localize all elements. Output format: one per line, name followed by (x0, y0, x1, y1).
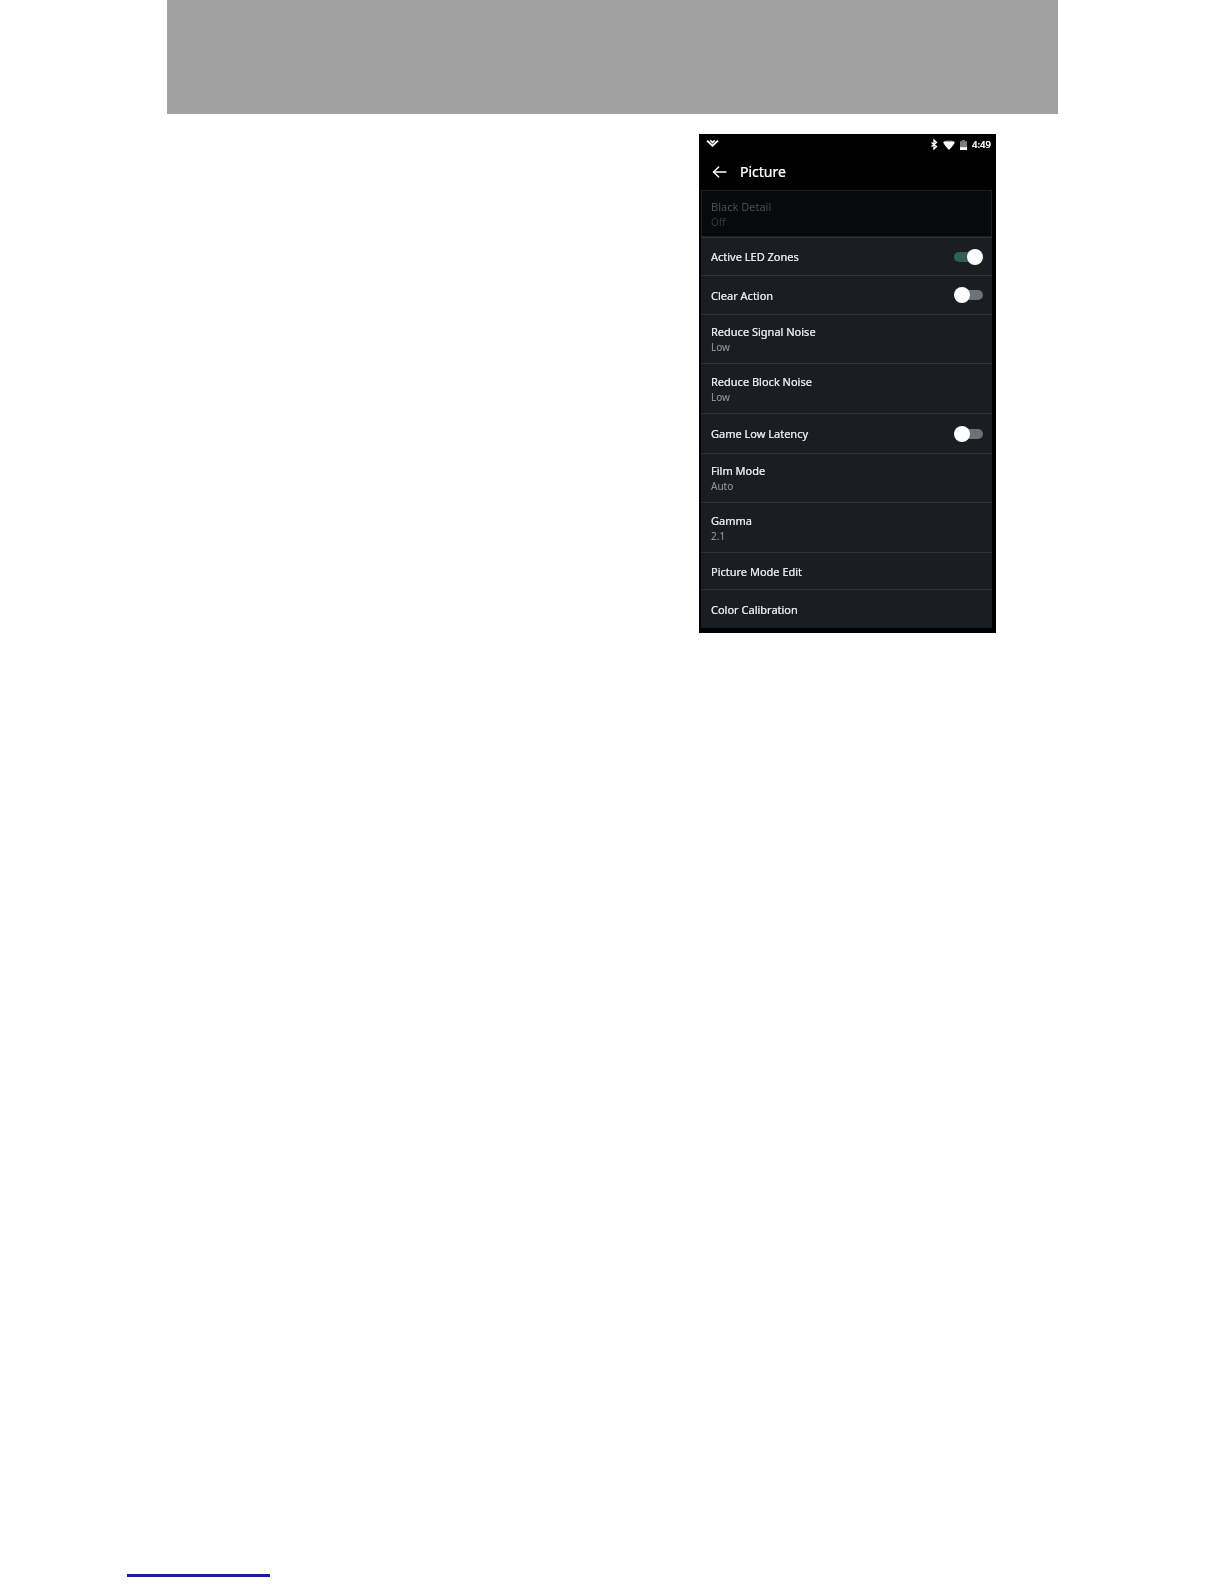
button[interactable]: Game Low Latency (701, 414, 992, 453)
button[interactable]: Active LED Zones (701, 238, 992, 275)
button[interactable]: Reduce Signal Noise (701, 315, 992, 363)
staticText: Active LED Zones (711, 249, 954, 264)
staticText: Reduce Signal Noise (711, 324, 816, 339)
staticText: Low (711, 340, 730, 354)
staticText: 2.1 (711, 529, 726, 543)
button[interactable]: Color Calibration (701, 590, 992, 628)
staticText: Gamma (711, 513, 752, 528)
button[interactable]: Back (710, 163, 728, 181)
staticText: Picture Mode Edit (711, 564, 803, 579)
other: Battery (960, 140, 967, 150)
button[interactable]: Reduce Block Noise (701, 364, 992, 413)
staticText: Color Calibration (711, 602, 798, 617)
other: Notifications (707, 140, 718, 146)
staticText: Black Detail (711, 199, 772, 214)
staticText: Auto (711, 479, 734, 493)
other: Bluetooth (931, 140, 937, 149)
button[interactable]: Picture Mode Edit (701, 553, 992, 589)
other: Wi-Fi (943, 140, 955, 150)
staticText: 4:49 (972, 138, 991, 151)
staticText: Film Mode (711, 463, 766, 478)
button[interactable]: Black Detail (701, 190, 992, 237)
staticText: Picture (740, 162, 786, 181)
staticText: Game Low Latency (711, 426, 954, 441)
staticText: Off (711, 215, 726, 229)
staticText: Reduce Block Noise (711, 374, 812, 389)
staticText: Clear Action (711, 288, 954, 303)
staticText: Low (711, 390, 730, 404)
button[interactable]: Film Mode (701, 454, 992, 502)
button[interactable]: Gamma (701, 503, 992, 552)
button[interactable]: Clear Action (701, 276, 992, 314)
